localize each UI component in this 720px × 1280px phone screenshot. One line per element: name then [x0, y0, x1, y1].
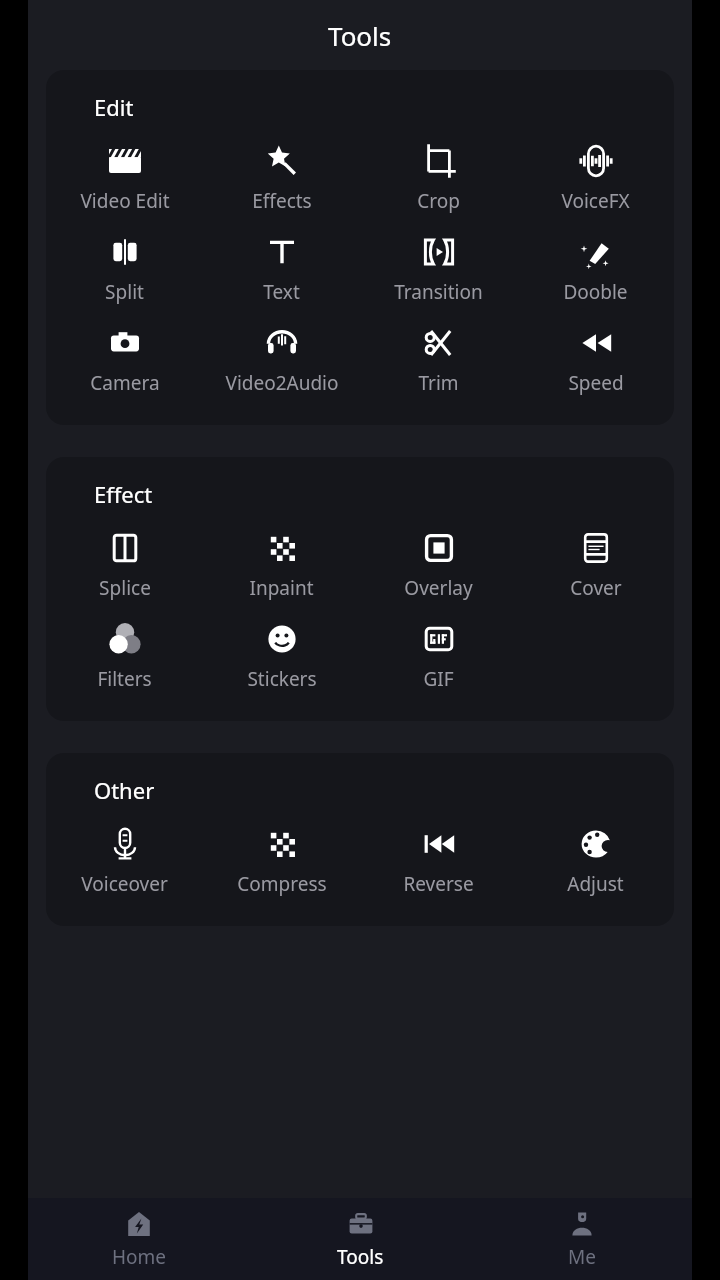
staticText: Effects	[252, 188, 312, 214]
staticText: Me	[568, 1244, 596, 1270]
button[interactable]: Overlay	[360, 519, 517, 610]
staticText: Filters	[97, 666, 152, 692]
staticText: Edit	[94, 92, 134, 122]
button[interactable]: VoiceFX	[517, 132, 674, 223]
button[interactable]: Me	[471, 1198, 692, 1280]
staticText: Compress	[237, 871, 327, 897]
staticText: GIF	[423, 666, 454, 692]
button[interactable]: Tools	[250, 1198, 471, 1280]
button[interactable]: Filters	[46, 610, 203, 701]
button[interactable]: Camera	[46, 314, 203, 405]
staticText: Crop	[417, 188, 460, 214]
staticText: Dooble	[563, 279, 628, 305]
staticText: Tools	[328, 18, 392, 53]
button[interactable]: Voiceover	[46, 815, 203, 906]
staticText: Transition	[394, 279, 483, 305]
button[interactable]: Dooble	[517, 223, 674, 314]
staticText: Video Edit	[80, 188, 170, 214]
button[interactable]: Text	[203, 223, 360, 314]
button[interactable]: Effects	[203, 132, 360, 223]
staticText: Effect	[94, 479, 153, 509]
staticText: Overlay	[404, 575, 473, 601]
button[interactable]: Split	[46, 223, 203, 314]
button[interactable]: Speed	[517, 314, 674, 405]
button[interactable]: Adjust	[517, 815, 674, 906]
button[interactable]: Trim	[360, 314, 517, 405]
button[interactable]: Video Edit	[46, 132, 203, 223]
staticText: Video2Audio	[225, 370, 339, 396]
button[interactable]: Transition	[360, 223, 517, 314]
staticText: VoiceFX	[561, 188, 630, 214]
staticText: Camera	[90, 370, 160, 396]
staticText: Speed	[568, 370, 624, 396]
button[interactable]: Stickers	[203, 610, 360, 701]
staticText: Voiceover	[81, 871, 168, 897]
staticText: Text	[263, 279, 300, 305]
button[interactable]: Video2Audio	[203, 314, 360, 405]
button[interactable]: Inpaint	[203, 519, 360, 610]
staticText: Adjust	[567, 871, 624, 897]
button[interactable]: Compress	[203, 815, 360, 906]
staticText: Other	[94, 775, 155, 805]
button[interactable]: Home	[28, 1198, 250, 1280]
staticText: Split	[105, 279, 144, 305]
button[interactable]: Reverse	[360, 815, 517, 906]
staticText: Splice	[99, 575, 151, 601]
staticText: Tools	[337, 1244, 384, 1270]
button[interactable]: GIF	[360, 610, 517, 701]
staticText: Home	[112, 1244, 167, 1270]
button[interactable]: Splice	[46, 519, 203, 610]
staticText: Trim	[418, 370, 459, 396]
button[interactable]: Crop	[360, 132, 517, 223]
button[interactable]: Cover	[517, 519, 674, 610]
staticText: Inpaint	[249, 575, 314, 601]
staticText: Reverse	[403, 871, 474, 897]
staticText: Cover	[570, 575, 622, 601]
staticText: Stickers	[247, 666, 317, 692]
